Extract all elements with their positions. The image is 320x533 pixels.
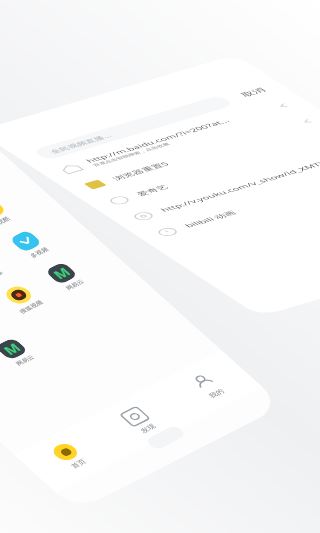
button[interactable]: Home bbox=[10, 411, 129, 501]
button[interactable]: http://m.baidu.com/?i=200?at... bbox=[47, 95, 303, 180]
staticText: 我的 bbox=[206, 386, 227, 401]
staticText: M bbox=[0, 338, 27, 360]
staticText: 首页 bbox=[68, 456, 89, 471]
staticText: 优酷 bbox=[0, 214, 12, 227]
button[interactable]: 头条 bbox=[0, 349, 18, 409]
button[interactable]: 多视频 bbox=[0, 220, 75, 280]
button[interactable]: http://v.youku.com/v_show/id_XMTY... bbox=[119, 143, 320, 228]
staticText: 搜狐视频 bbox=[17, 296, 45, 318]
button[interactable]: M bbox=[0, 327, 61, 388]
button[interactable]: M bbox=[30, 252, 110, 312]
button[interactable]: Profile bbox=[148, 341, 267, 430]
staticText: 网易云 bbox=[13, 352, 37, 369]
staticText: 取消 bbox=[238, 86, 268, 98]
staticText: 网易云 bbox=[63, 276, 87, 293]
staticText: 全民视频直播... bbox=[47, 132, 114, 155]
staticText: 头条 bbox=[0, 268, 5, 281]
button[interactable]: 取消 bbox=[235, 85, 271, 100]
staticText: http://v.youku.com/v_show/id_XMTY... bbox=[156, 157, 320, 213]
staticText: M bbox=[47, 262, 77, 284]
button[interactable]: Discover bbox=[80, 376, 198, 465]
button[interactable]: 浏览器重置5 bbox=[71, 111, 320, 196]
button[interactable]: 优酷 bbox=[0, 295, 25, 355]
staticText: http://m.baidu.com/?i=200?at... bbox=[82, 117, 234, 164]
staticText: 多视频 bbox=[28, 244, 51, 261]
button[interactable]: 优酷 bbox=[0, 187, 39, 248]
staticText: 爱奇艺 bbox=[134, 183, 171, 198]
button[interactable]: 搜狐视频 bbox=[0, 273, 68, 334]
staticText: bilibili 动画 bbox=[181, 209, 240, 229]
button[interactable]: bilibili 动画 bbox=[143, 158, 320, 243]
staticText: 百度点击智能搜索，点击收藏 bbox=[91, 142, 172, 167]
button[interactable]: 爱奇艺 bbox=[95, 127, 320, 212]
staticText: 发现 bbox=[138, 421, 158, 436]
button[interactable]: 头条 bbox=[0, 241, 32, 302]
button[interactable]: 全民视频直播... bbox=[42, 98, 225, 158]
staticText: 浏览器重置5 bbox=[109, 160, 172, 182]
